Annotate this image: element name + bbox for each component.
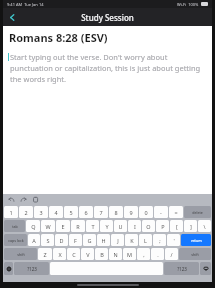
- button[interactable]: 5: [64, 206, 78, 218]
- button[interactable]: M: [123, 248, 136, 260]
- button[interactable]: shift: [4, 248, 37, 260]
- button[interactable]: 7: [94, 206, 108, 218]
- staticText: 8: [114, 209, 118, 216]
- staticText: caps lock: [8, 238, 24, 243]
- button[interactable]: G: [83, 234, 96, 246]
- button[interactable]: 1: [4, 206, 18, 218]
- button[interactable]: caps lock: [4, 234, 27, 246]
- button[interactable]: X: [53, 248, 66, 260]
- staticText: J: [117, 237, 119, 244]
- staticText: /: [170, 251, 173, 258]
- button[interactable]: V: [81, 248, 94, 260]
- button[interactable]: S: [41, 234, 54, 246]
- staticText: Wi-Fi 100%: [177, 2, 199, 7]
- button[interactable]: shift: [179, 248, 211, 260]
- button[interactable]: N: [109, 248, 122, 260]
- staticText: 9: [129, 209, 133, 216]
- staticText: 5: [69, 209, 73, 216]
- button[interactable]: Redo: [20, 196, 27, 203]
- staticText: 2: [24, 209, 28, 216]
- staticText: T: [91, 223, 95, 230]
- staticText: 9:41 AM Tue Jan 14: [7, 2, 44, 7]
- button[interactable]: ]: [184, 220, 197, 232]
- button[interactable]: F: [69, 234, 82, 246]
- staticText: ,: [143, 251, 145, 258]
- button[interactable]: Z: [38, 248, 52, 260]
- staticText: shift: [17, 252, 25, 257]
- button[interactable]: 6: [79, 206, 93, 218]
- button[interactable]: ?123: [14, 262, 49, 275]
- staticText: N: [113, 251, 118, 258]
- button[interactable]: Hide keyboard: [200, 262, 211, 275]
- staticText: .: [157, 251, 159, 258]
- button[interactable]: O: [142, 220, 155, 232]
- button[interactable]: Emoji: [4, 262, 13, 275]
- button[interactable]: 4: [49, 206, 63, 218]
- button[interactable]: Paste: [32, 196, 39, 203]
- button[interactable]: W: [41, 220, 55, 232]
- button[interactable]: U: [114, 220, 127, 232]
- staticText: X: [58, 251, 62, 258]
- staticText: \: [203, 223, 206, 230]
- button[interactable]: Undo: [8, 196, 15, 203]
- button[interactable]: I: [128, 220, 141, 232]
- button[interactable]: C: [67, 248, 80, 260]
- button[interactable]: ;: [153, 234, 166, 246]
- button[interactable]: 2: [19, 206, 33, 218]
- staticText: 3: [39, 209, 43, 216]
- button[interactable]: ,: [137, 248, 150, 260]
- button[interactable]: B: [95, 248, 108, 260]
- button[interactable]: 3: [34, 206, 48, 218]
- button[interactable]: ': [167, 234, 180, 246]
- button[interactable]: tab: [4, 220, 25, 232]
- button[interactable]: H: [97, 234, 110, 246]
- staticText: Romans 8:28 (ESV): [9, 30, 108, 45]
- staticText: 1: [9, 209, 13, 216]
- button[interactable]: /: [165, 248, 178, 260]
- button[interactable]: L: [139, 234, 152, 246]
- button[interactable]: \: [198, 220, 211, 232]
- button[interactable]: .: [151, 248, 164, 260]
- staticText: ?123: [27, 266, 37, 272]
- button[interactable]: J: [111, 234, 124, 246]
- button[interactable]: 0: [139, 206, 153, 218]
- button[interactable]: delete: [184, 206, 211, 218]
- staticText: Q: [31, 223, 36, 230]
- staticText: D: [59, 237, 64, 244]
- button[interactable]: R: [71, 220, 85, 232]
- button[interactable]: [: [170, 220, 183, 232]
- button[interactable]: Back: [3, 8, 21, 26]
- staticText: ;: [159, 237, 161, 244]
- button[interactable]: E: [56, 220, 70, 232]
- staticText: C: [72, 251, 76, 258]
- staticText: return: [191, 238, 202, 243]
- staticText: Y: [105, 223, 109, 230]
- staticText: shift: [191, 252, 199, 257]
- button[interactable]: Q: [26, 220, 40, 232]
- button[interactable]: T: [86, 220, 99, 232]
- staticText: H: [101, 237, 106, 244]
- button[interactable]: 9: [124, 206, 138, 218]
- button[interactable]: return: [181, 234, 211, 246]
- staticText: 7: [99, 209, 103, 216]
- button[interactable]: D: [55, 234, 68, 246]
- staticText: P: [161, 223, 165, 230]
- button[interactable]: P: [156, 220, 169, 232]
- staticText: 0: [144, 209, 148, 216]
- button[interactable]: -: [154, 206, 168, 218]
- button[interactable]: 8: [109, 206, 123, 218]
- staticText: delete: [192, 210, 203, 215]
- button[interactable]: ?123: [164, 262, 199, 275]
- staticText: ?123: [177, 266, 187, 272]
- staticText: tab: [12, 224, 18, 229]
- staticText: U: [118, 223, 123, 230]
- staticText: Study Session: [81, 12, 134, 23]
- staticText: I: [134, 223, 136, 230]
- staticText: B: [100, 251, 104, 258]
- button[interactable]: A: [28, 234, 40, 246]
- button[interactable]: =: [169, 206, 183, 218]
- button[interactable]: Y: [100, 220, 113, 232]
- button[interactable]: K: [125, 234, 138, 246]
- staticText: A: [32, 237, 36, 244]
